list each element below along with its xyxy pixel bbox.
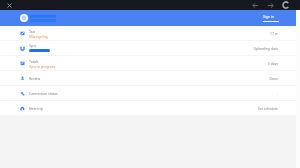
staticText: Review — [29, 76, 41, 81]
staticText: Mileage log — [29, 34, 48, 39]
staticText: Done — [269, 76, 278, 81]
button[interactable]: Sync — [0, 41, 296, 56]
staticText: . — [277, 91, 278, 96]
staticText: Sign in — [263, 14, 274, 19]
button[interactable]: Forward — [265, 0, 276, 10]
staticText: Set schedule — [257, 106, 278, 111]
staticText: Connection status — [29, 91, 58, 96]
staticText: Sync — [29, 43, 37, 48]
button[interactable]: Sign in — [262, 14, 280, 22]
button[interactable]: Back — [250, 0, 261, 10]
staticText: Totals — [29, 59, 39, 64]
button[interactable]: Next trip — [0, 101, 296, 116]
button[interactable]: Taxi — [0, 26, 296, 41]
staticText: Uploading data — [253, 46, 278, 51]
staticText: Taxi — [29, 29, 36, 34]
button[interactable]: App logo — [20, 14, 28, 22]
button[interactable]: Close — [5, 1, 14, 10]
staticText: 17 m — [270, 31, 278, 36]
staticText: Next trip — [29, 106, 43, 111]
button[interactable]: Totals — [0, 56, 296, 71]
button[interactable]: Connection status — [0, 86, 296, 101]
staticText: Sync in progress — [29, 64, 56, 69]
button[interactable]: Reload — [280, 0, 291, 10]
button[interactable]: Review — [0, 71, 296, 86]
staticText: 3 days — [267, 61, 278, 66]
